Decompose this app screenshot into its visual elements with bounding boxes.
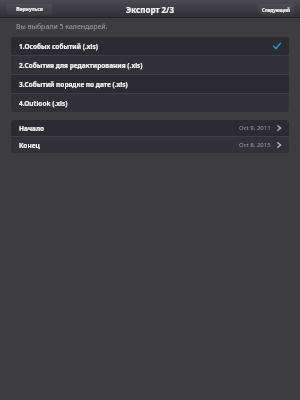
staticText: Вернуться bbox=[16, 6, 43, 13]
staticText: Следующий bbox=[262, 7, 290, 13]
button[interactable]: 2.События для редактирования (.xls) bbox=[11, 56, 289, 74]
button[interactable]: Следующий bbox=[258, 4, 294, 15]
staticText: Экспорт 2/3 bbox=[126, 4, 174, 15]
staticText: 4.Outlook (.xls) bbox=[19, 99, 281, 108]
other: Selected bbox=[273, 42, 281, 50]
staticText: 1.Особых событий (.xls) bbox=[19, 42, 273, 51]
staticText: 3.Событий порядке по дате (.xls) bbox=[19, 80, 281, 89]
button[interactable]: 1.Особых событий (.xls) bbox=[11, 37, 289, 55]
button[interactable]: Конец bbox=[11, 137, 289, 153]
button[interactable]: 4.Outlook (.xls) bbox=[11, 94, 289, 112]
staticText: Oct 8, 2015 bbox=[239, 141, 271, 149]
button[interactable]: 3.Событий порядке по дате (.xls) bbox=[11, 75, 289, 93]
staticText: Oct 9, 2011 bbox=[239, 124, 271, 132]
staticText: 2.События для редактирования (.xls) bbox=[19, 61, 281, 70]
button[interactable]: Начало bbox=[11, 120, 289, 136]
button[interactable]: Вернуться bbox=[6, 4, 52, 15]
staticText: Конец bbox=[19, 141, 239, 150]
staticText: Вы выбрали 5 календарей. bbox=[16, 22, 108, 32]
staticText: Начало bbox=[19, 124, 239, 133]
